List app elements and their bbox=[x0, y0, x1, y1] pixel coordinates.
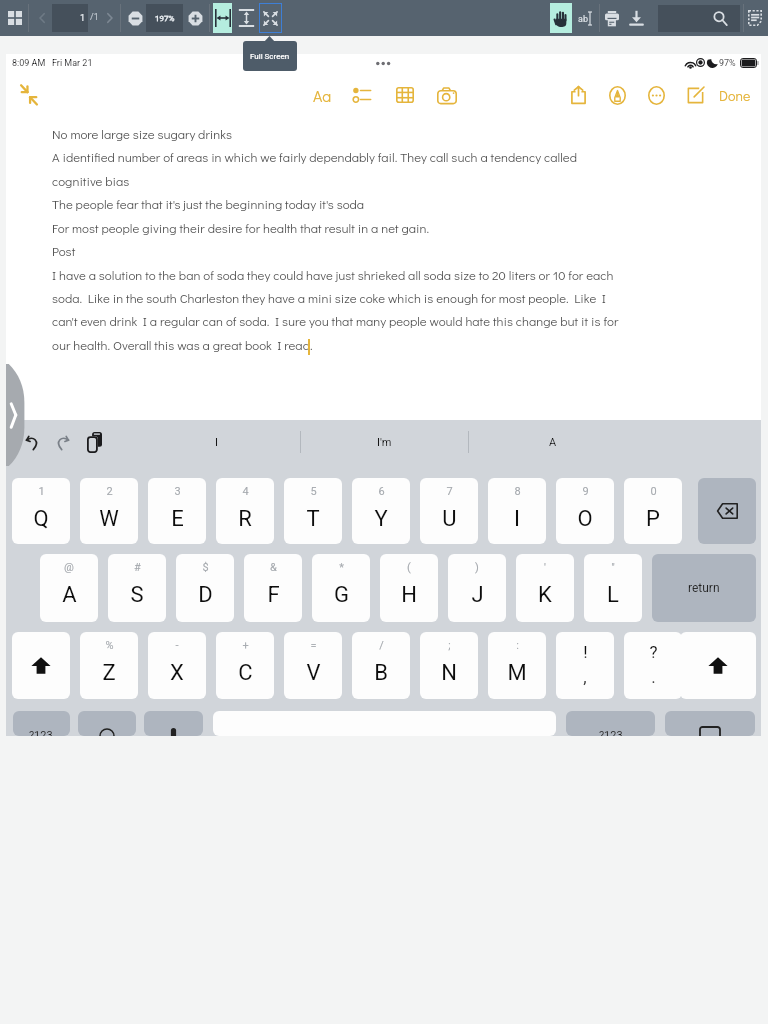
button[interactable]: ! bbox=[556, 632, 614, 699]
button[interactable]: ; bbox=[420, 632, 478, 699]
staticText: ' bbox=[544, 561, 546, 574]
button[interactable]: Collapse note bbox=[16, 82, 42, 108]
button[interactable]: / bbox=[352, 632, 410, 699]
button[interactable]: Notes panel bbox=[747, 4, 763, 32]
button[interactable]: - bbox=[148, 632, 206, 699]
button[interactable]: + bbox=[216, 632, 274, 699]
button[interactable]: 6 bbox=[352, 478, 410, 544]
staticText: Fri Mar 21 bbox=[52, 58, 93, 69]
staticText: 6 bbox=[378, 485, 385, 498]
staticText: The people fear that it's just the begin… bbox=[52, 195, 365, 212]
staticText: ; bbox=[448, 639, 451, 652]
staticText: $ bbox=[202, 561, 209, 574]
button[interactable]: 1 bbox=[12, 478, 70, 544]
staticText: 1 bbox=[38, 485, 45, 498]
button[interactable]: Shift bbox=[680, 632, 756, 699]
button[interactable]: & bbox=[244, 554, 302, 622]
button[interactable]: Search bbox=[658, 5, 740, 32]
button[interactable]: Hide keyboard bbox=[665, 711, 755, 736]
button[interactable]: 0 bbox=[624, 478, 682, 544]
button[interactable]: Pan tool bbox=[550, 3, 572, 33]
button[interactable]: Paste bbox=[86, 429, 102, 455]
button[interactable]: More options bbox=[643, 82, 669, 108]
staticText: - bbox=[175, 639, 179, 652]
staticText: I bbox=[215, 436, 218, 449]
button[interactable]: Shift bbox=[12, 632, 70, 699]
button[interactable]: = bbox=[284, 632, 342, 699]
button[interactable]: 2 bbox=[80, 478, 138, 544]
button[interactable]: # bbox=[108, 554, 166, 622]
button[interactable]: Insert table bbox=[392, 82, 418, 108]
button[interactable]: 4 bbox=[216, 478, 274, 544]
staticText: 2 bbox=[106, 485, 113, 498]
button[interactable]: Undo bbox=[24, 430, 40, 454]
staticText: C bbox=[238, 660, 253, 686]
button[interactable]: Delete bbox=[698, 478, 756, 544]
button[interactable]: $ bbox=[176, 554, 234, 622]
button[interactable]: 7 bbox=[420, 478, 478, 544]
staticText: For most people giving their desire for … bbox=[52, 219, 430, 236]
staticText: R bbox=[238, 506, 252, 532]
button[interactable]: Checklist bbox=[349, 82, 375, 108]
button[interactable]: Share bbox=[566, 82, 590, 108]
button[interactable]: I bbox=[132, 428, 300, 456]
button[interactable]: Fit width bbox=[213, 3, 232, 33]
button[interactable]: A bbox=[469, 428, 637, 456]
button[interactable]: Previous page bbox=[32, 5, 52, 31]
staticText: 8 bbox=[514, 485, 521, 498]
button[interactable]: Markup bbox=[604, 82, 630, 108]
staticText: soda. Like in the south Charleston they … bbox=[52, 289, 606, 306]
staticText: ) bbox=[475, 561, 479, 574]
staticText: 9 bbox=[582, 485, 589, 498]
button[interactable]: ' bbox=[516, 554, 574, 622]
staticText: : bbox=[516, 639, 519, 652]
button[interactable]: ) bbox=[448, 554, 506, 622]
button[interactable]: New note bbox=[682, 82, 708, 108]
button[interactable]: Camera bbox=[434, 82, 460, 108]
button[interactable]: 9 bbox=[556, 478, 614, 544]
button[interactable]: % bbox=[80, 632, 138, 699]
button[interactable]: Download bbox=[628, 4, 644, 32]
button[interactable]: I'm bbox=[300, 428, 468, 456]
staticText: @ bbox=[64, 561, 74, 574]
staticText: ! bbox=[583, 642, 588, 662]
button[interactable]: : bbox=[488, 632, 546, 699]
staticText: can't even drink I a regular can of soda… bbox=[52, 312, 619, 329]
button[interactable]: Print bbox=[604, 4, 620, 32]
staticText: our health. Overall this was a great boo… bbox=[52, 336, 313, 353]
staticText: 197% bbox=[155, 14, 175, 23]
button[interactable]: Return bbox=[652, 554, 756, 622]
button[interactable]: Dictation bbox=[144, 711, 203, 736]
button[interactable]: ? bbox=[624, 632, 682, 699]
button[interactable]: Text select tool bbox=[575, 6, 595, 30]
button[interactable]: Zoom out bbox=[125, 7, 145, 29]
staticText: D bbox=[198, 582, 213, 608]
button[interactable]: Full Screen bbox=[259, 3, 282, 33]
button[interactable]: 3 bbox=[148, 478, 206, 544]
button[interactable]: Zoom in bbox=[185, 7, 205, 29]
staticText: W bbox=[99, 506, 119, 532]
staticText: Z bbox=[102, 660, 116, 686]
button[interactable]: Done bbox=[716, 82, 754, 108]
button[interactable]: Emoji bbox=[78, 711, 136, 736]
button[interactable]: ( bbox=[380, 554, 438, 622]
staticText: return bbox=[688, 581, 720, 595]
button[interactable]: " bbox=[584, 554, 642, 622]
button[interactable]: Next page bbox=[100, 5, 120, 31]
button[interactable]: Numbers and symbols bbox=[13, 711, 70, 736]
button[interactable]: Redo bbox=[55, 430, 71, 454]
button[interactable]: * bbox=[312, 554, 370, 622]
button[interactable]: @ bbox=[40, 554, 98, 622]
button[interactable]: Text format bbox=[308, 82, 336, 108]
button[interactable]: 5 bbox=[284, 478, 342, 544]
button[interactable]: Show sidebar bbox=[6, 364, 26, 466]
button[interactable]: Page thumbnails bbox=[3, 4, 27, 32]
staticText: 7 bbox=[446, 485, 453, 498]
button[interactable]: Fit height bbox=[237, 4, 255, 32]
staticText: A bbox=[62, 582, 77, 608]
button[interactable]: 8 bbox=[488, 478, 546, 544]
staticText: I have a solution to the ban of soda the… bbox=[52, 266, 614, 283]
staticText: L bbox=[607, 582, 619, 608]
button[interactable]: Numbers and symbols bbox=[566, 711, 655, 736]
